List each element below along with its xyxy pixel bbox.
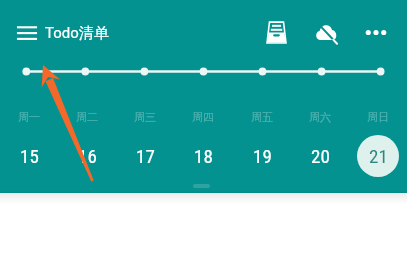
button[interactable]: 18 — [182, 135, 224, 177]
staticText: 周四 — [192, 110, 214, 124]
staticText: 15 — [20, 145, 39, 167]
button[interactable]: 20 — [299, 135, 341, 177]
staticText: 周一 — [18, 110, 40, 124]
staticText: 周日 — [367, 110, 389, 124]
staticText: 20 — [311, 145, 330, 167]
staticText: 周五 — [251, 110, 273, 124]
button[interactable]: Open navigation menu — [10, 16, 44, 50]
button[interactable]: 16 — [66, 135, 108, 177]
staticText: 周六 — [309, 110, 331, 124]
button[interactable]: Offline — [306, 12, 346, 52]
button[interactable]: 19 — [241, 135, 283, 177]
staticText: 周二 — [76, 110, 98, 124]
staticText: Todo清单 — [45, 24, 109, 43]
staticText: 21 — [369, 145, 388, 167]
button[interactable]: Archive — [256, 12, 296, 52]
staticText: 周三 — [134, 110, 156, 124]
staticText: 17 — [136, 145, 155, 167]
button[interactable]: 17 — [124, 135, 166, 177]
staticText: 18 — [194, 145, 213, 167]
staticText: 19 — [253, 145, 272, 167]
button[interactable]: More options — [355, 12, 395, 52]
button[interactable]: 21 — [357, 135, 399, 177]
button[interactable]: 15 — [8, 135, 50, 177]
staticText: 16 — [78, 145, 97, 167]
